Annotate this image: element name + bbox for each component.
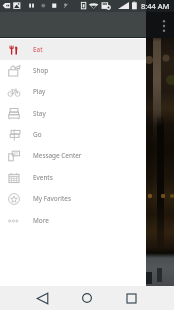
button[interactable]: Home: [73, 286, 101, 310]
button[interactable]: Shop: [0, 60, 146, 81]
button[interactable]: Go: [0, 124, 146, 145]
button[interactable]: Eat: [0, 39, 146, 60]
staticText: Play: [33, 87, 46, 96]
button[interactable]: Message Center: [0, 145, 146, 166]
staticText: Go: [33, 130, 42, 139]
staticText: My Favorites: [33, 194, 71, 203]
button[interactable]: Recents: [117, 286, 145, 310]
button[interactable]: More options: [159, 18, 169, 34]
button[interactable]: Events: [0, 167, 146, 188]
button[interactable]: My Favorites: [0, 188, 146, 209]
staticText: Events: [33, 173, 53, 182]
button[interactable]: Play: [0, 81, 146, 102]
staticText: Stay: [33, 109, 46, 118]
staticText: Eat: [33, 45, 43, 54]
staticText: Message Center: [33, 151, 82, 160]
button[interactable]: Stay: [0, 103, 146, 124]
button[interactable]: More: [0, 210, 146, 231]
staticText: Shop: [33, 66, 49, 75]
staticText: 8:44 AM: [141, 1, 170, 11]
staticText: More: [33, 216, 49, 225]
button[interactable]: Back: [28, 286, 56, 310]
